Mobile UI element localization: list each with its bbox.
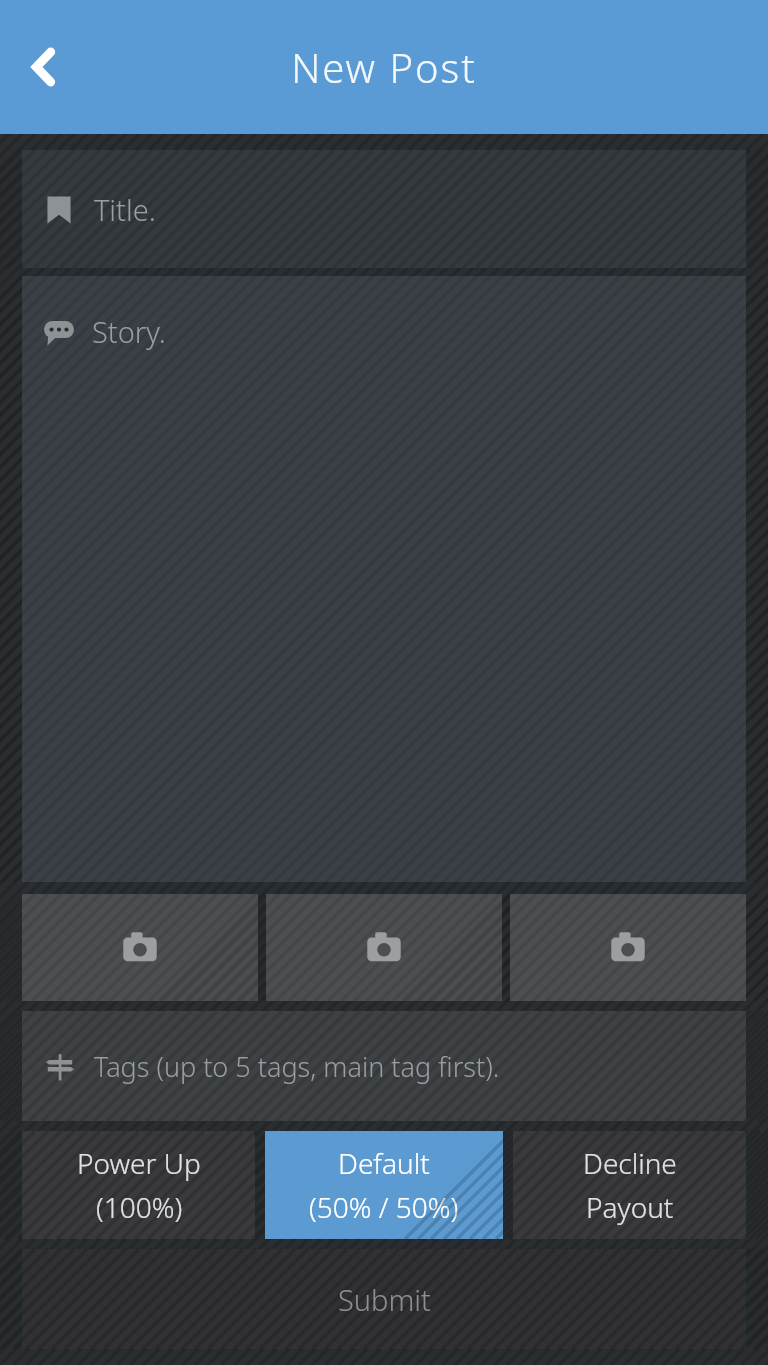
button[interactable]: Back — [12, 36, 74, 98]
button[interactable]: Story. — [22, 276, 746, 882]
button[interactable]: Title. — [22, 150, 746, 268]
staticText: Title. — [94, 190, 156, 229]
staticText: Payout — [586, 1188, 674, 1226]
staticText: Story. — [92, 312, 166, 351]
staticText: Decline — [583, 1144, 677, 1182]
button[interactable]: Power Up — [22, 1131, 255, 1239]
staticText: Default — [338, 1144, 430, 1182]
staticText: Submit — [338, 1280, 431, 1319]
staticText: New Post — [291, 40, 477, 94]
button[interactable]: Submit — [22, 1249, 746, 1349]
button[interactable]: Add photo — [22, 894, 258, 1001]
button[interactable]: Default — [265, 1131, 503, 1239]
button[interactable]: Tags (up to 5 tags, main tag first). — [22, 1011, 746, 1121]
staticText: (50% / 50%) — [309, 1188, 459, 1226]
button[interactable]: Add photo — [510, 894, 746, 1001]
staticText: Power Up — [77, 1144, 201, 1182]
button[interactable]: Add photo — [266, 894, 502, 1001]
button[interactable]: Decline — [513, 1131, 746, 1239]
staticText: Tags (up to 5 tags, main tag first). — [94, 1048, 500, 1085]
staticText: (100%) — [96, 1188, 183, 1226]
